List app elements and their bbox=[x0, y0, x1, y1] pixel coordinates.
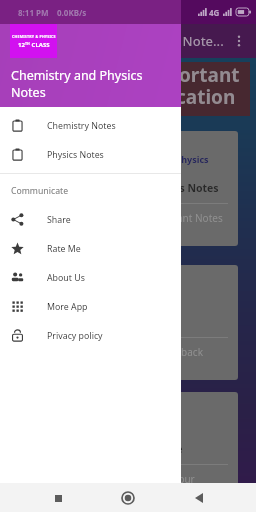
staticText: Chemistry Important Notes bbox=[94, 211, 223, 225]
staticText: Share Me bbox=[134, 442, 183, 456]
button[interactable]: More options bbox=[227, 29, 251, 53]
staticText: About Us bbox=[47, 272, 85, 284]
staticText: More App bbox=[47, 301, 88, 313]
button[interactable]: Chemistry Notes bbox=[0, 111, 181, 140]
button[interactable]: Open navigation drawer bbox=[8, 28, 34, 54]
button[interactable]: Rate Us bbox=[18, 265, 238, 380]
staticText: Share bbox=[47, 214, 71, 226]
staticText: Privacy policy bbox=[47, 330, 103, 342]
staticText: Communicate bbox=[11, 185, 69, 197]
button[interactable]: Privacy policy bbox=[0, 321, 181, 350]
button[interactable]: Share Me bbox=[18, 392, 238, 507]
button[interactable]: Rate Me bbox=[0, 234, 181, 263]
button[interactable]: Back bbox=[186, 485, 212, 511]
staticText: 12 bbox=[18, 41, 25, 49]
staticText: CHEMISTRY & PHYSICS bbox=[12, 34, 56, 39]
button[interactable]: Recents bbox=[45, 485, 71, 511]
staticText: Give your feedback bbox=[113, 345, 204, 359]
staticText: 8:11 PM bbox=[18, 7, 49, 18]
staticText: CLASS bbox=[30, 41, 50, 49]
staticText: Physics Notes bbox=[47, 149, 104, 161]
button[interactable]: More App bbox=[0, 292, 181, 321]
staticText: Chemistry Notes Notes bbox=[97, 181, 219, 195]
staticText: Important Education And bbox=[141, 62, 250, 116]
staticText: Chemistry Notes bbox=[47, 120, 116, 132]
staticText: TH bbox=[25, 41, 30, 46]
button[interactable]: Share bbox=[0, 205, 181, 234]
staticText: Chemistry and Physics bbox=[108, 153, 209, 165]
staticText: 4G bbox=[209, 7, 220, 18]
button[interactable]: About Us bbox=[0, 263, 181, 292]
button[interactable]: Home bbox=[115, 485, 141, 511]
staticText: Rate Me bbox=[47, 243, 81, 255]
staticText: 0.0KB/s bbox=[57, 7, 87, 18]
staticText: Chemistry and Physics Note... bbox=[40, 32, 227, 50]
staticText: Share with your bbox=[121, 472, 195, 486]
button[interactable]: Chemistry and Physics bbox=[18, 131, 238, 246]
button[interactable]: Physics Notes bbox=[0, 140, 181, 169]
staticText: Chemistry and Physics Notes bbox=[11, 67, 143, 101]
